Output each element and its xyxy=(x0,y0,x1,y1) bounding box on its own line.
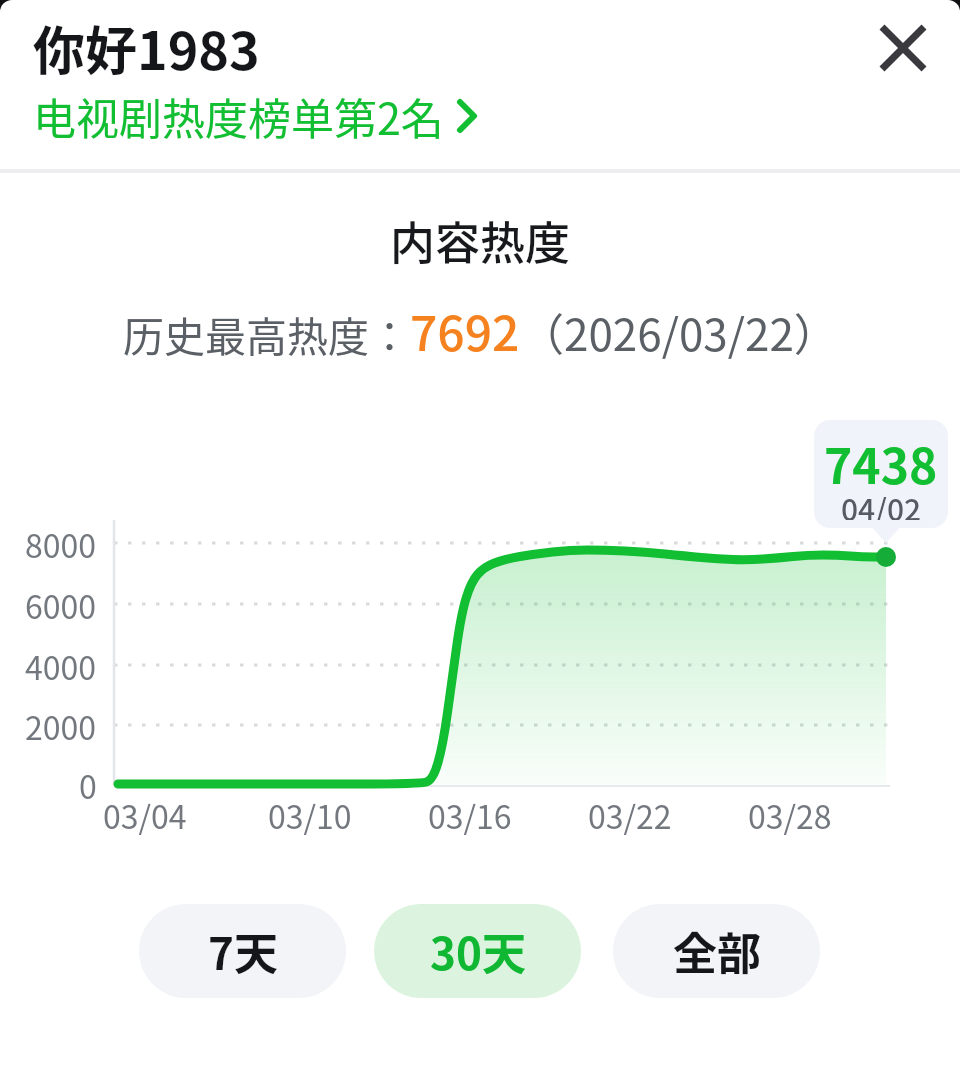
button[interactable]: 7天 xyxy=(139,904,346,998)
staticText: 03/16 xyxy=(428,792,512,836)
button[interactable]: 电视剧热度榜单第2名 xyxy=(33,85,480,147)
staticText: 03/22 xyxy=(588,792,672,836)
staticText: 你好1983 xyxy=(33,10,260,85)
staticText: 2000 xyxy=(25,703,97,747)
staticText: 4000 xyxy=(25,643,97,687)
staticText: 03/10 xyxy=(268,792,352,836)
staticText: 7438 xyxy=(824,428,938,490)
staticText: 历史最高热度： xyxy=(123,304,410,363)
staticText: 0 xyxy=(79,762,97,806)
staticText: 30天 xyxy=(430,919,526,983)
staticText: （2026/03/22） xyxy=(520,300,838,364)
staticText: 7天 xyxy=(208,919,278,983)
staticText: 03/04 xyxy=(103,792,187,836)
staticText: 8000 xyxy=(25,521,97,565)
button[interactable] xyxy=(863,8,943,88)
staticText: 04/02 xyxy=(841,486,922,520)
staticText: 全部 xyxy=(673,919,761,983)
button[interactable]: 30天 xyxy=(374,904,581,998)
staticText: 内容热度 xyxy=(390,208,571,273)
staticText: 7692 xyxy=(410,295,520,365)
staticText: 电视剧热度榜单第2名 xyxy=(33,85,444,147)
button[interactable]: 全部 xyxy=(613,904,820,998)
staticText: 03/28 xyxy=(748,792,832,836)
staticText: 6000 xyxy=(25,582,97,626)
